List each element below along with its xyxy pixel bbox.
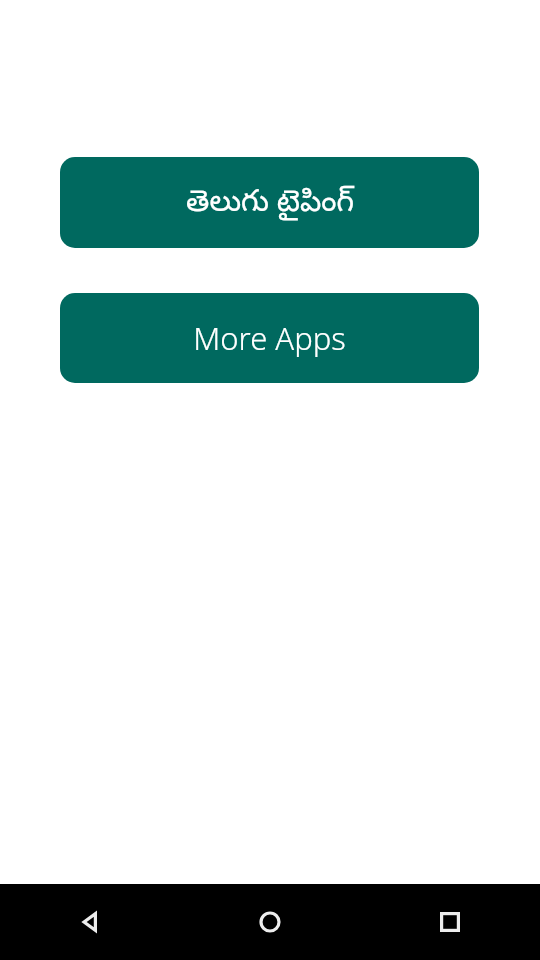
staticText: తెలుగు టైపింగ్ [186, 179, 354, 226]
staticText: More Apps [193, 317, 346, 359]
button[interactable]: Back [0, 884, 180, 960]
button[interactable]: More Apps [60, 293, 479, 383]
button[interactable]: Home [180, 884, 360, 960]
button[interactable]: తెలుగు టైపింగ్ [60, 157, 479, 248]
button[interactable]: Recent apps [360, 884, 540, 960]
